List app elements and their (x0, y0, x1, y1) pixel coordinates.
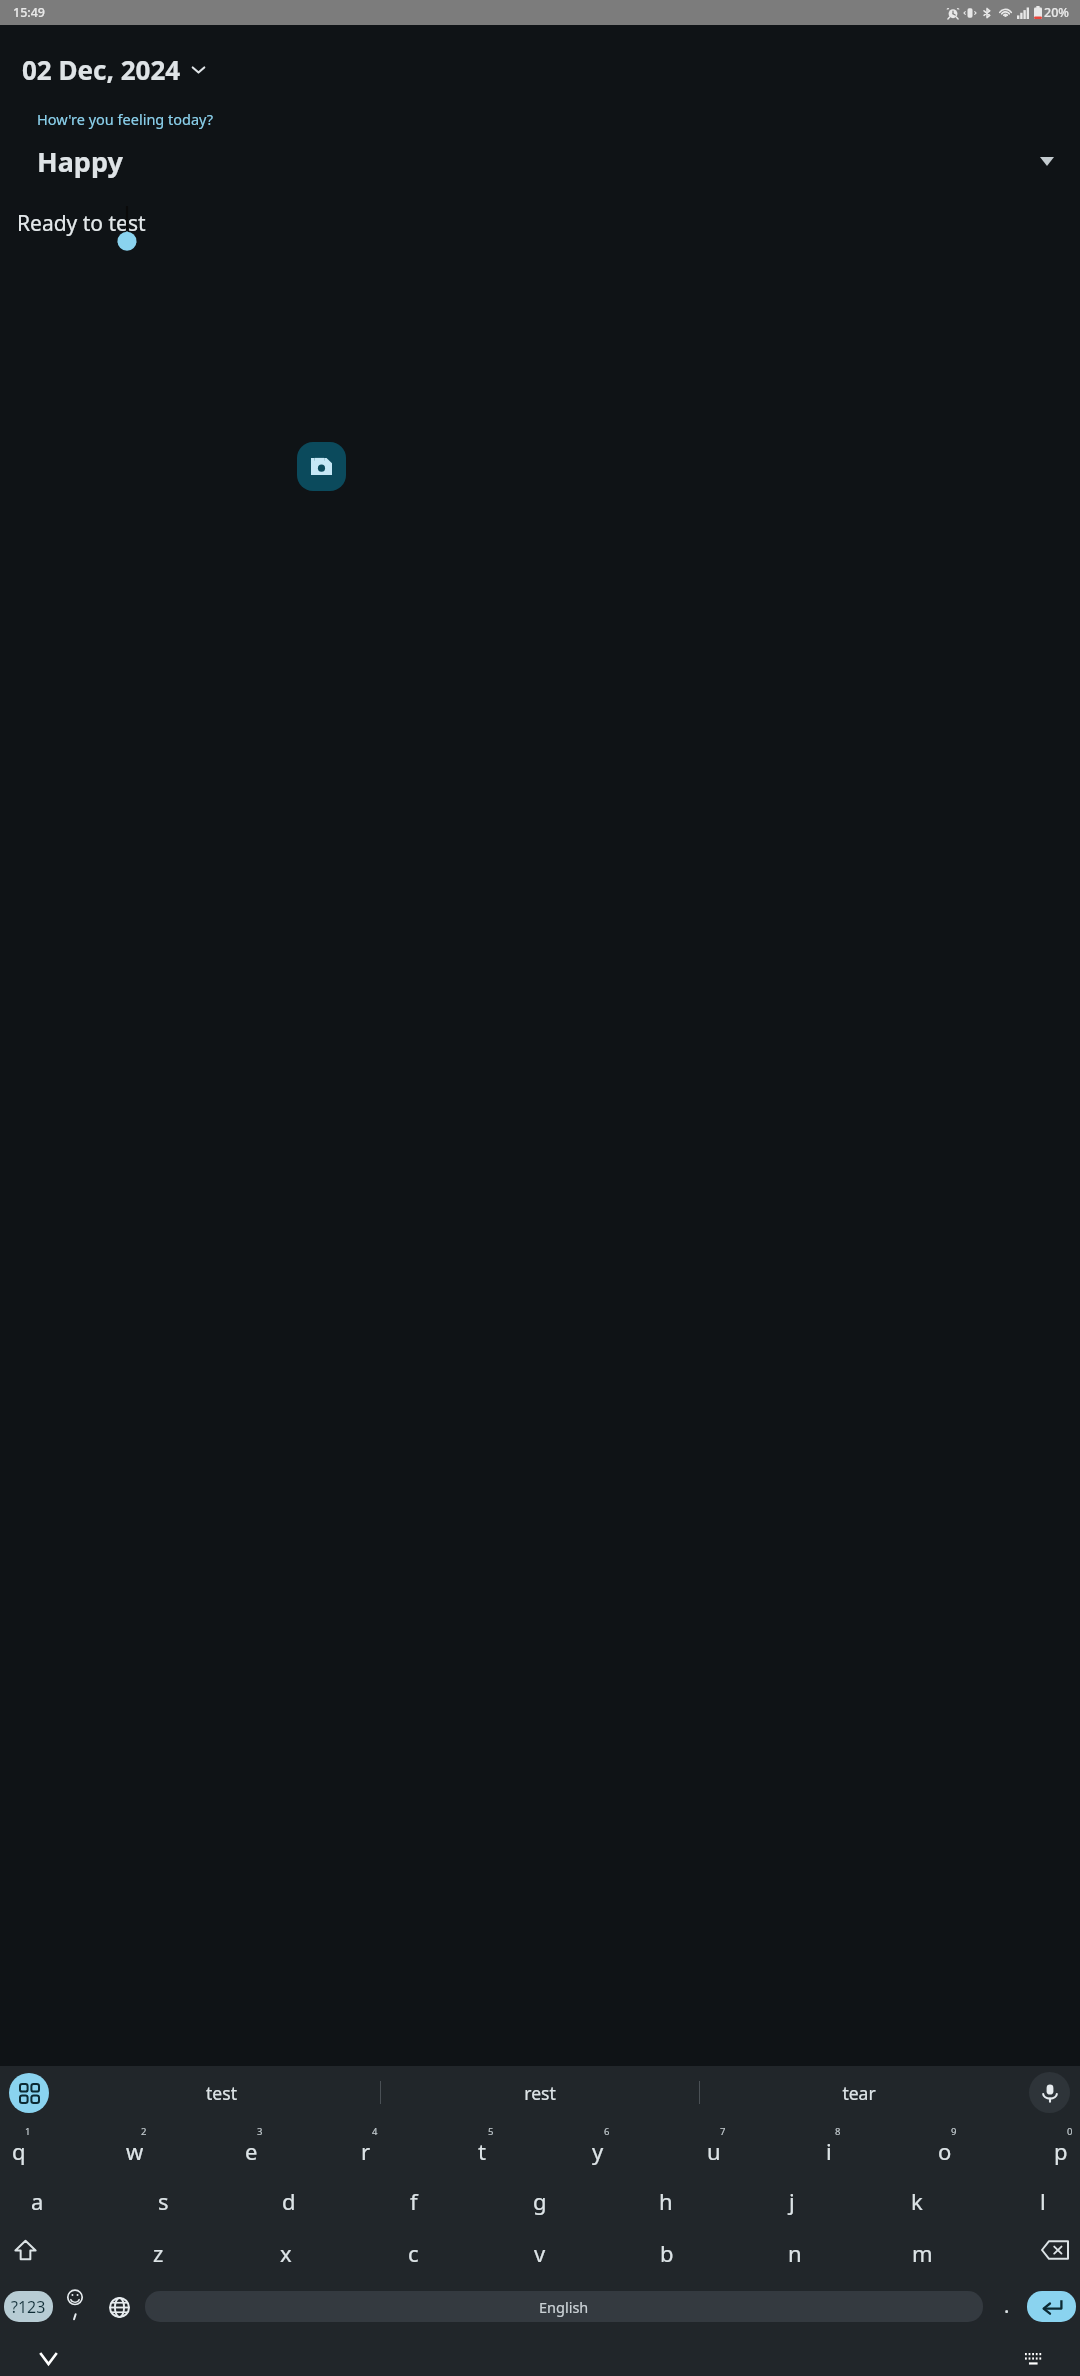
staticText: ?123 (11, 2296, 46, 2318)
staticText: 6 (604, 2125, 610, 2138)
button[interactable]: m (904, 2226, 940, 2274)
staticText: 20% (1044, 4, 1069, 21)
button[interactable]: Save (297, 442, 346, 491)
staticText: rest (524, 2081, 556, 2105)
button[interactable]: h (648, 2174, 684, 2222)
staticText: l (1040, 2186, 1046, 2216)
button[interactable]: 02 Dec, 2024 (0, 46, 1080, 93)
button[interactable]: ?123 (4, 2291, 53, 2322)
button[interactable]: g (522, 2174, 558, 2222)
staticText: Happy (37, 143, 123, 180)
button[interactable]: s (145, 2174, 181, 2222)
button[interactable]: test (62, 2066, 380, 2119)
button[interactable]: x (268, 2226, 304, 2274)
button[interactable]: 9 (927, 2124, 963, 2172)
staticText: m (912, 2238, 933, 2268)
staticText: test (206, 2081, 237, 2105)
button[interactable]: l (1025, 2174, 1061, 2222)
staticText: n (788, 2238, 802, 2268)
staticText: tear (842, 2081, 876, 2105)
staticText: . (1004, 2292, 1010, 2319)
button[interactable]: Happy (0, 141, 1080, 182)
button[interactable]: Hide keyboard (33, 2344, 63, 2374)
button[interactable]: Backspace (1031, 2226, 1079, 2274)
staticText: 9 (951, 2125, 957, 2138)
staticText: 2 (141, 2125, 147, 2138)
button[interactable]: Voice input (1029, 2072, 1070, 2113)
staticText: a (31, 2186, 44, 2216)
button[interactable]: English (145, 2291, 983, 2322)
button[interactable]: 0 (1043, 2124, 1079, 2172)
staticText: 15:49 (13, 4, 46, 21)
button[interactable]: Toolbar (9, 2073, 49, 2113)
staticText: 1 (25, 2125, 31, 2138)
button[interactable]: rest (381, 2066, 699, 2119)
staticText: h (659, 2186, 673, 2216)
button[interactable]: b (649, 2226, 685, 2274)
button[interactable]: Ready to test (0, 206, 1080, 264)
button[interactable]: v (522, 2226, 558, 2274)
staticText: u (707, 2136, 721, 2166)
button[interactable]: 7 (696, 2124, 732, 2172)
staticText: q (12, 2136, 26, 2166)
staticText: r (361, 2136, 371, 2166)
staticText: 0 (1067, 2125, 1073, 2138)
button[interactable]: z (140, 2226, 176, 2274)
staticText: z (153, 2238, 164, 2268)
button[interactable]: 5 (464, 2124, 500, 2172)
button[interactable]: tear (700, 2066, 1018, 2119)
staticText: 4 (372, 2125, 378, 2138)
button[interactable]: n (777, 2226, 813, 2274)
button[interactable]: . (987, 2284, 1027, 2330)
staticText: f (410, 2186, 418, 2216)
staticText: 3 (257, 2125, 263, 2138)
staticText: English (539, 2297, 589, 2317)
button[interactable]: d (271, 2174, 307, 2222)
staticText: 5 (488, 2125, 494, 2138)
button[interactable]: f (396, 2174, 432, 2222)
button[interactable]: c (395, 2226, 431, 2274)
button[interactable]: 8 (811, 2124, 847, 2172)
button[interactable]: 2 (117, 2124, 153, 2172)
button[interactable]: 4 (348, 2124, 384, 2172)
button[interactable]: a (19, 2174, 55, 2222)
staticText: d (282, 2186, 296, 2216)
button[interactable]: j (774, 2174, 810, 2222)
staticText: k (911, 2186, 923, 2216)
staticText: o (938, 2136, 952, 2166)
button[interactable]: Change language (97, 2284, 141, 2330)
staticText: Ready to test (17, 209, 146, 238)
staticText: i (826, 2136, 832, 2166)
staticText: g (533, 2186, 547, 2216)
button[interactable]: 6 (580, 2124, 616, 2172)
button[interactable]: 1 (1, 2124, 37, 2172)
staticText: b (660, 2238, 674, 2268)
staticText: j (789, 2186, 795, 2216)
button[interactable]: Emoji (53, 2284, 97, 2330)
staticText: p (1054, 2136, 1068, 2166)
button[interactable]: Shift (1, 2226, 49, 2274)
staticText: 8 (835, 2125, 841, 2138)
button[interactable]: 3 (233, 2124, 269, 2172)
staticText: 02 Dec, 2024 (22, 52, 181, 87)
staticText: y (592, 2136, 604, 2166)
staticText: v (534, 2238, 546, 2268)
staticText: w (126, 2136, 144, 2166)
button[interactable]: k (899, 2174, 935, 2222)
staticText: e (245, 2136, 258, 2166)
staticText: x (280, 2238, 292, 2268)
button[interactable]: Switch keyboard (1019, 2344, 1049, 2374)
staticText: t (478, 2136, 486, 2166)
staticText: c (408, 2238, 419, 2268)
staticText: 7 (720, 2125, 726, 2138)
staticText: s (158, 2186, 169, 2216)
button[interactable]: Enter (1027, 2291, 1076, 2322)
staticText: How're you feeling today? (37, 109, 214, 129)
